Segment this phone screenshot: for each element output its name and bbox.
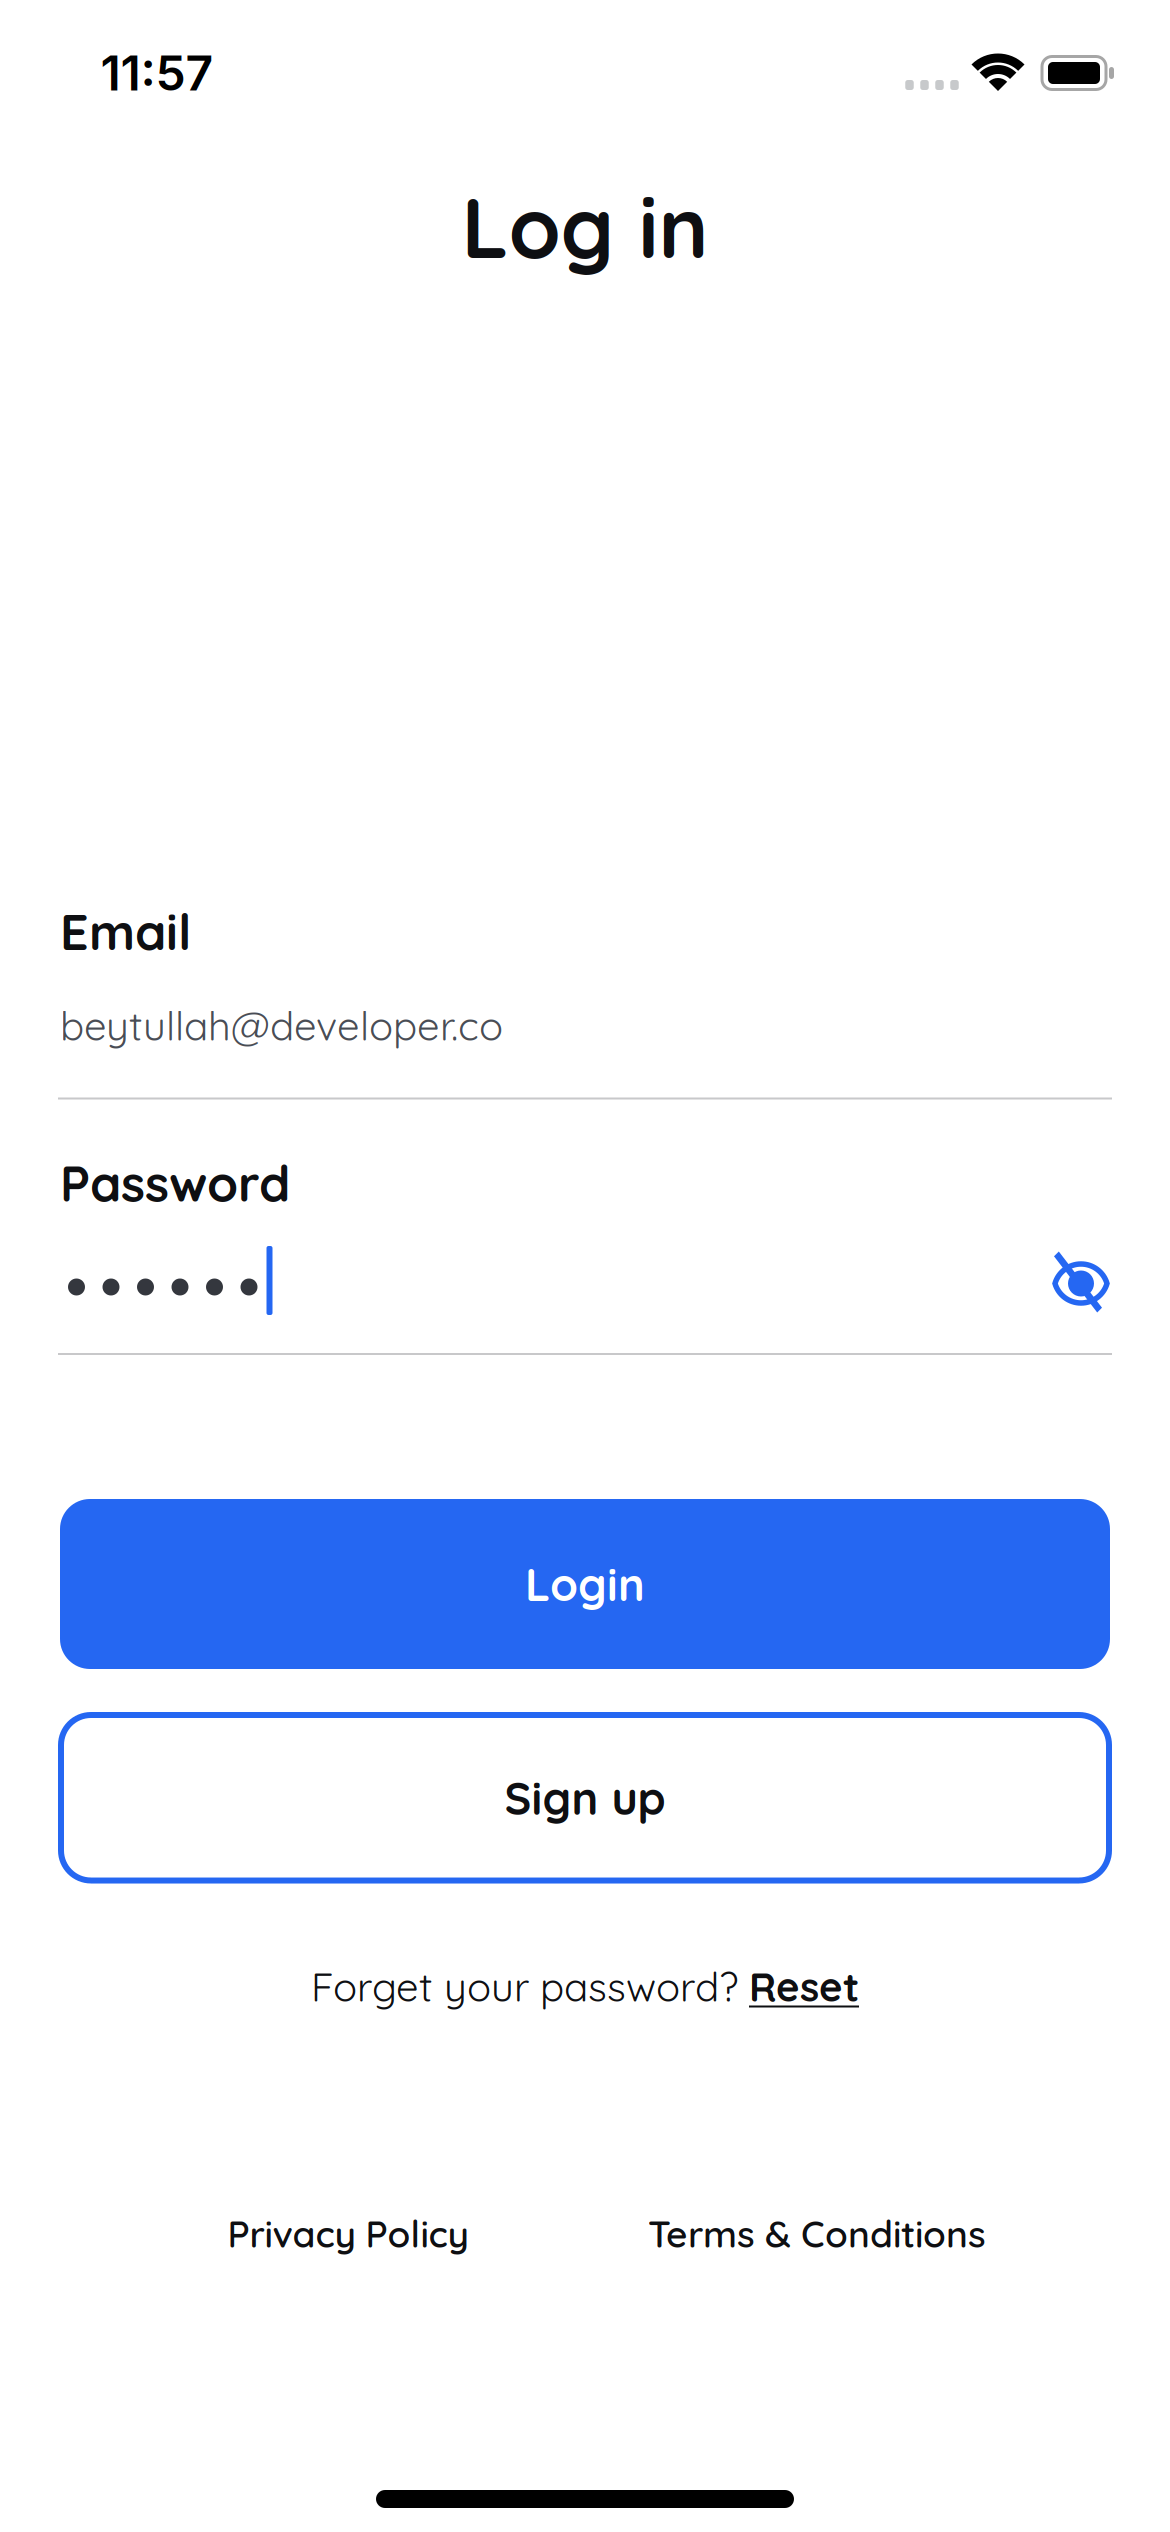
button[interactable]: Show password xyxy=(1052,1252,1110,1314)
button[interactable]: Terms & Conditions xyxy=(648,2210,986,2257)
staticText: Password xyxy=(60,1151,290,1214)
button[interactable]: Reset xyxy=(749,1961,859,2011)
button[interactable]: Privacy Policy xyxy=(227,2210,468,2257)
staticText: Terms & Conditions xyxy=(648,2210,986,2257)
staticText: Reset xyxy=(749,1961,859,2011)
staticText: Log in xyxy=(461,174,708,279)
staticText: Privacy Policy xyxy=(227,2210,468,2257)
staticText: Sign up xyxy=(504,1770,665,1826)
staticText: 11:57 xyxy=(100,44,213,102)
staticText: beytullah@developer.co xyxy=(60,1000,503,1050)
button[interactable]: Login xyxy=(60,1499,1110,1669)
staticText: Forget your password? xyxy=(311,1961,749,2011)
staticText: Email xyxy=(60,900,192,962)
staticText: Login xyxy=(525,1556,645,1612)
button[interactable]: Sign up xyxy=(61,1715,1109,1880)
